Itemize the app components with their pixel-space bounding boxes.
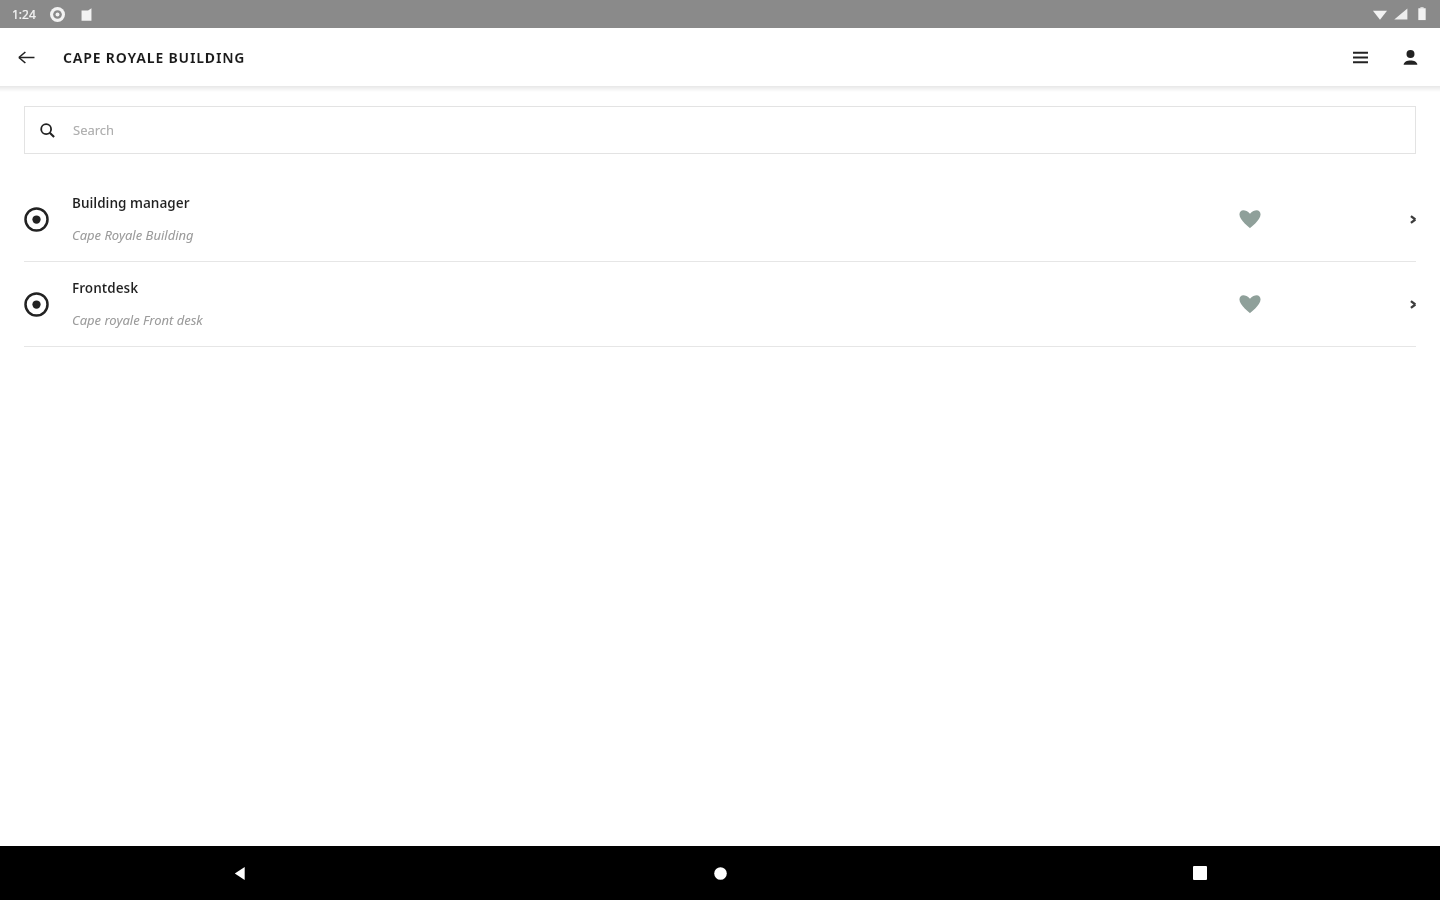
- button[interactable]: Open details: [1390, 282, 1434, 326]
- button[interactable]: Frontdesk: [0, 262, 1440, 346]
- button[interactable]: Back: [8, 39, 44, 75]
- button[interactable]: Account: [1388, 35, 1432, 79]
- button[interactable]: Favorite: [1224, 278, 1276, 330]
- button[interactable]: Recent apps: [960, 846, 1440, 900]
- staticText: Search: [73, 121, 115, 139]
- button[interactable]: Search: [24, 106, 1416, 154]
- button[interactable]: Back: [0, 846, 480, 900]
- staticText: Frontdesk: [72, 279, 139, 297]
- button[interactable]: Favorite: [1224, 193, 1276, 245]
- staticText: CAPE ROYALE BUILDING: [63, 48, 246, 67]
- staticText: Building manager: [72, 194, 190, 212]
- staticText: 1:24: [12, 6, 36, 22]
- staticText: Cape royale Front desk: [72, 311, 203, 329]
- staticText: Cape Royale Building: [72, 226, 194, 244]
- button[interactable]: Menu: [1338, 35, 1382, 79]
- button[interactable]: Home: [480, 846, 960, 900]
- button[interactable]: Building manager: [0, 177, 1440, 261]
- button[interactable]: Open details: [1390, 197, 1434, 241]
